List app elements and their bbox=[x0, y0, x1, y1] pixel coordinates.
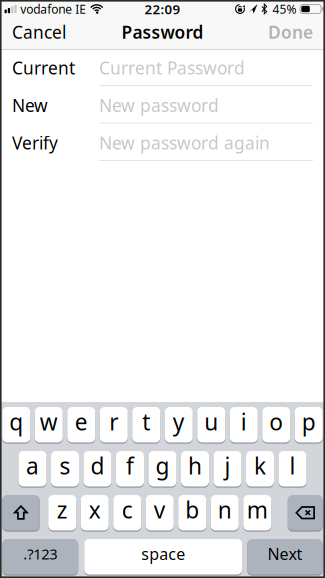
button[interactable]: space bbox=[84, 538, 242, 575]
button[interactable]: q bbox=[2, 406, 30, 443]
staticText: z bbox=[57, 495, 68, 525]
button[interactable]: v bbox=[146, 494, 174, 531]
button[interactable]: k bbox=[246, 450, 274, 487]
button[interactable]: x bbox=[81, 494, 109, 531]
staticText: y bbox=[173, 407, 185, 437]
button[interactable]: h bbox=[181, 450, 209, 487]
button[interactable]: Verify password field bbox=[0, 125, 325, 162]
button[interactable]: y bbox=[165, 406, 193, 443]
staticText: i bbox=[241, 407, 247, 437]
button[interactable]: r bbox=[100, 406, 128, 443]
button[interactable]: w bbox=[35, 406, 63, 443]
staticText: k bbox=[254, 451, 266, 481]
button[interactable]: p bbox=[295, 406, 323, 443]
button[interactable]: o bbox=[262, 406, 290, 443]
staticText: Password bbox=[121, 21, 203, 44]
button[interactable]: Shift bbox=[2, 494, 40, 531]
staticText: New password again bbox=[99, 131, 270, 154]
staticText: Current Password bbox=[99, 56, 245, 79]
staticText: g bbox=[155, 451, 169, 481]
button[interactable]: Current password field bbox=[0, 50, 325, 87]
staticText: o bbox=[269, 407, 283, 437]
button[interactable]: Delete bbox=[288, 494, 323, 531]
staticText: a bbox=[26, 451, 39, 481]
staticText: 45% bbox=[272, 1, 296, 17]
button[interactable]: Done bbox=[268, 21, 325, 44]
button[interactable]: c bbox=[113, 494, 141, 531]
staticText: r bbox=[109, 407, 118, 437]
staticText: .?123 bbox=[23, 544, 57, 563]
staticText: b bbox=[185, 495, 199, 525]
button[interactable]: n bbox=[211, 494, 239, 531]
staticText: m bbox=[247, 495, 268, 525]
staticText: f bbox=[126, 451, 134, 481]
staticText: n bbox=[218, 495, 232, 525]
staticText: v bbox=[154, 495, 166, 525]
staticText: New password bbox=[99, 94, 219, 117]
staticText: x bbox=[89, 495, 101, 525]
staticText: Next bbox=[267, 543, 302, 564]
button[interactable]: m bbox=[243, 494, 271, 531]
staticText: s bbox=[59, 451, 70, 481]
button[interactable]: Next bbox=[247, 538, 323, 575]
button[interactable]: j bbox=[213, 450, 241, 487]
button[interactable]: e bbox=[67, 406, 95, 443]
staticText: u bbox=[204, 407, 218, 437]
staticText: w bbox=[40, 407, 58, 437]
staticText: Done bbox=[268, 21, 313, 44]
staticText: d bbox=[90, 451, 104, 481]
button[interactable]: g bbox=[148, 450, 176, 487]
button[interactable]: f bbox=[116, 450, 144, 487]
staticText: Verify bbox=[12, 131, 58, 154]
staticText: l bbox=[289, 451, 295, 481]
staticText: space bbox=[141, 543, 185, 564]
button[interactable]: s bbox=[51, 450, 79, 487]
staticText: e bbox=[75, 407, 88, 437]
button[interactable]: a bbox=[18, 450, 46, 487]
button[interactable]: t bbox=[132, 406, 160, 443]
button[interactable]: i bbox=[230, 406, 258, 443]
button[interactable]: l bbox=[278, 450, 306, 487]
staticText: 22:09 bbox=[144, 0, 180, 18]
staticText: Cancel bbox=[12, 21, 66, 44]
button[interactable]: u bbox=[197, 406, 225, 443]
staticText: New bbox=[12, 94, 48, 117]
button[interactable]: New password field bbox=[0, 87, 325, 125]
staticText: j bbox=[224, 451, 230, 481]
staticText: Current bbox=[12, 56, 75, 79]
staticText: c bbox=[122, 495, 133, 525]
staticText: vodafone IE bbox=[20, 1, 86, 17]
button[interactable]: .?123 bbox=[2, 538, 78, 575]
staticText: q bbox=[9, 407, 23, 437]
button[interactable]: d bbox=[83, 450, 111, 487]
staticText: h bbox=[188, 451, 202, 481]
button[interactable]: z bbox=[48, 494, 76, 531]
button[interactable]: Cancel bbox=[0, 21, 66, 44]
button[interactable]: b bbox=[178, 494, 206, 531]
staticText: p bbox=[302, 407, 316, 437]
staticText: t bbox=[142, 407, 150, 437]
